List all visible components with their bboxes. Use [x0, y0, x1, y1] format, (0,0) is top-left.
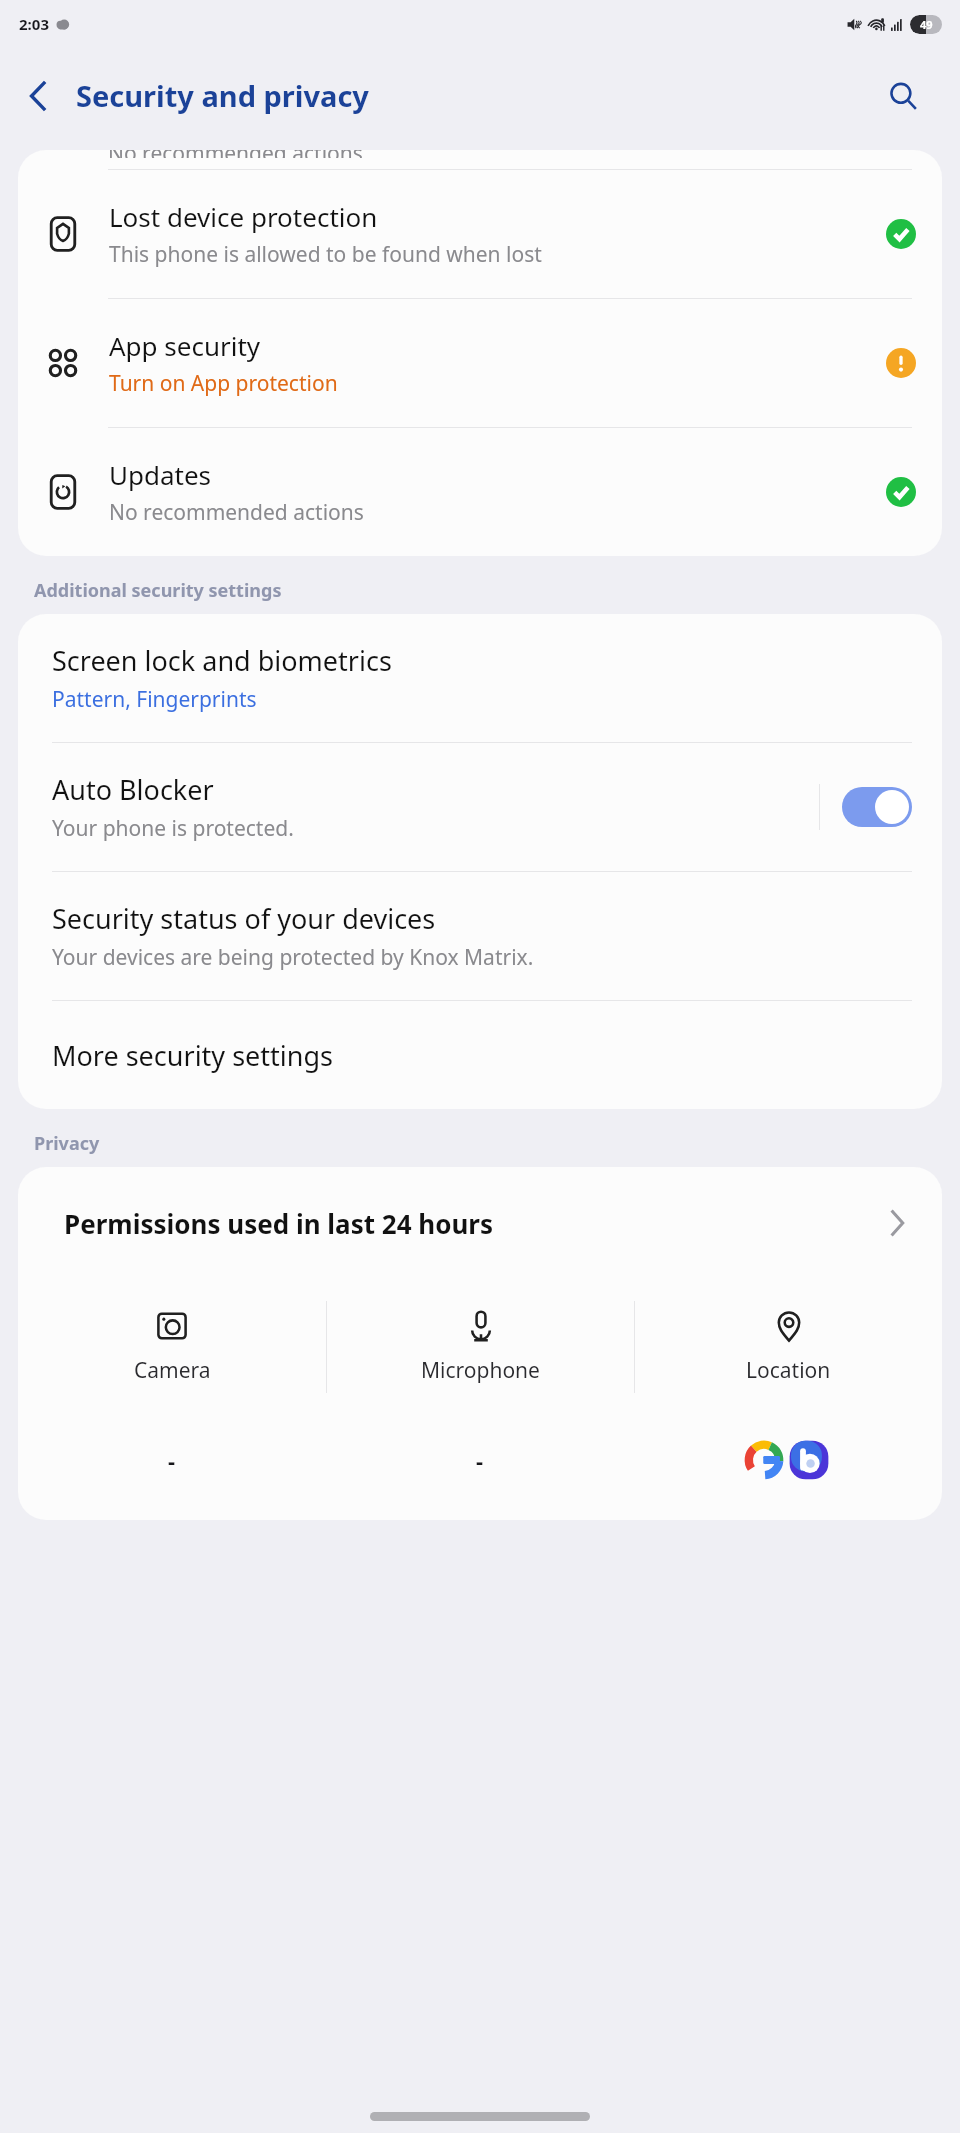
staticText: No recommended actions — [108, 150, 363, 158]
button[interactable]: More security settings — [18, 1001, 942, 1109]
button[interactable]: Camera — [18, 1301, 326, 1393]
button[interactable]: Auto Blocker — [18, 743, 942, 871]
button[interactable]: Screen lock and biometrics — [18, 614, 942, 742]
staticText: Additional security settings — [34, 578, 282, 603]
button[interactable]: Security status of your devices — [18, 872, 942, 1000]
staticText: - — [168, 1445, 176, 1475]
staticText: Permissions used in last 24 hours — [64, 1206, 888, 1241]
staticText: Location — [746, 1356, 831, 1385]
staticText: Your devices are being protected by Knox… — [52, 943, 534, 972]
button[interactable]: Lost device protection — [18, 170, 942, 298]
staticText: Your phone is protected. — [52, 814, 294, 843]
staticText: Updates — [109, 457, 212, 492]
button[interactable]: Search — [872, 65, 934, 127]
staticText: Privacy — [34, 1131, 100, 1156]
button[interactable]: Updates — [18, 428, 942, 556]
staticText: Camera — [134, 1356, 211, 1385]
staticText: No recommended actions — [109, 498, 364, 527]
button[interactable]: Location — [635, 1301, 942, 1393]
button[interactable]: Back — [8, 65, 70, 127]
button[interactable]: Microphone — [327, 1301, 634, 1393]
staticText: Microphone — [421, 1356, 540, 1385]
staticText: Lost device protection — [109, 199, 378, 234]
staticText: Pattern, Fingerprints — [52, 685, 257, 714]
button[interactable]: Auto Blocker toggle — [842, 787, 912, 827]
staticText: Security and privacy — [76, 76, 369, 115]
button[interactable]: Permissions used in last 24 hours — [18, 1167, 942, 1279]
staticText: Turn on App protection — [109, 369, 338, 398]
button[interactable]: App security — [18, 299, 942, 427]
staticText: More security settings — [52, 1037, 333, 1074]
staticText: Auto Blocker — [52, 771, 214, 808]
staticText: 2:03 — [19, 14, 49, 34]
staticText: Screen lock and biometrics — [52, 642, 392, 679]
staticText: App security — [109, 328, 261, 363]
staticText: - — [476, 1445, 484, 1475]
staticText: Security status of your devices — [52, 900, 436, 937]
staticText: 49 — [920, 17, 933, 32]
staticText: This phone is allowed to be found when l… — [109, 240, 542, 269]
